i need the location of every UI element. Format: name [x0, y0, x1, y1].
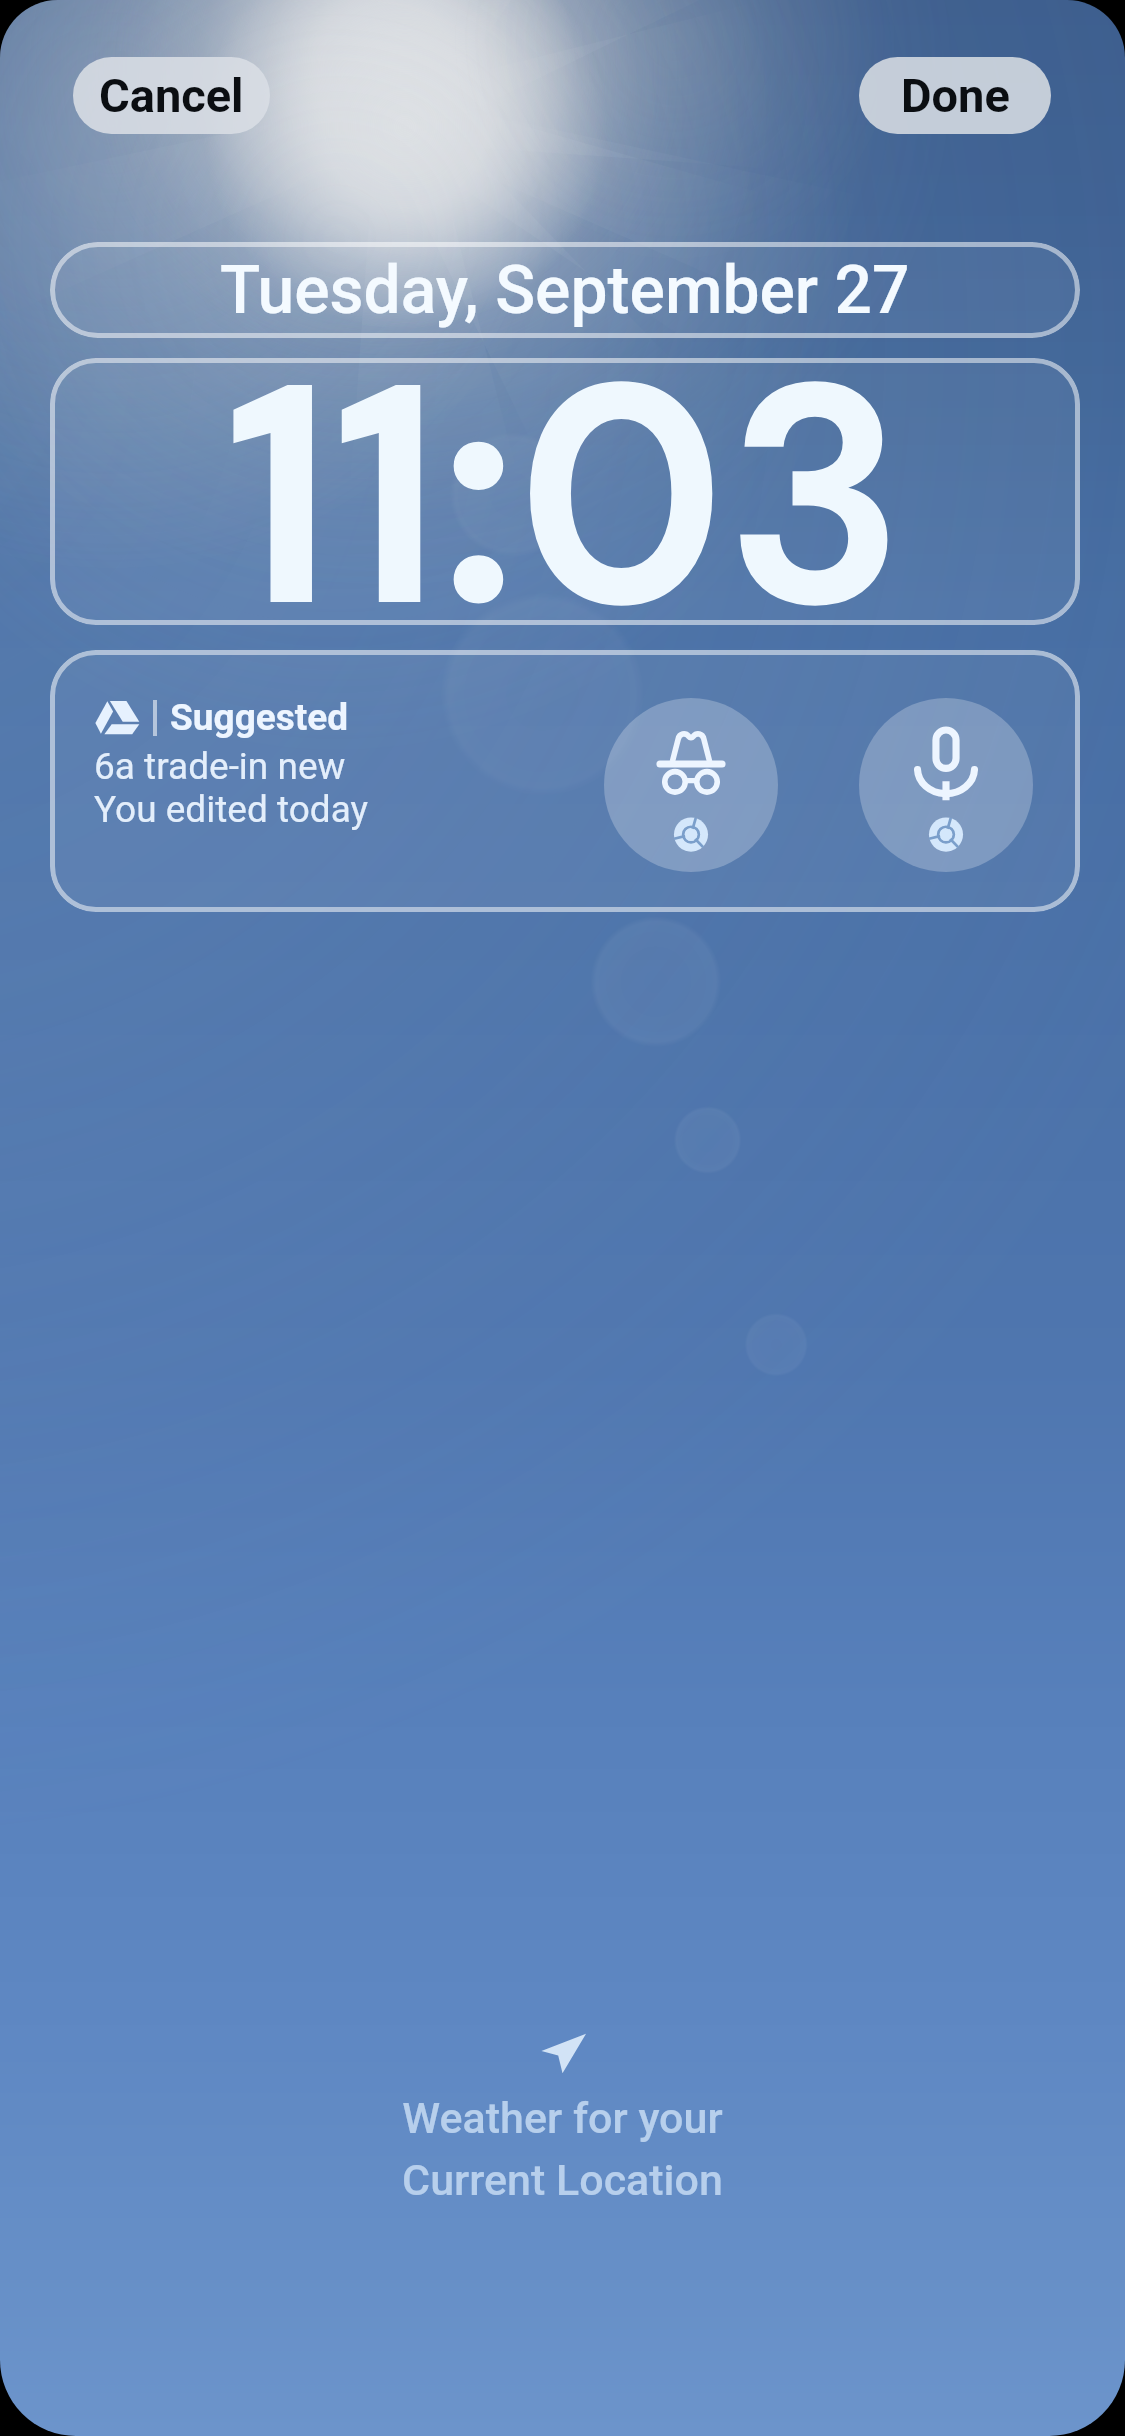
button[interactable]: 11:03 — [50, 358, 1080, 625]
staticText: Weather for your — [402, 2093, 723, 2143]
button[interactable]: Tuesday, September 27 — [50, 242, 1080, 338]
staticText: 6a trade-in new — [94, 745, 346, 788]
staticText: Tuesday, September 27 — [220, 252, 910, 329]
staticText: 11:03 — [224, 358, 906, 625]
staticText: You edited today — [94, 788, 369, 831]
staticText: Suggested — [170, 696, 349, 739]
button[interactable]: Weather for your — [402, 2032, 723, 2205]
button[interactable]: Open incognito tab in Chrome — [604, 698, 778, 872]
staticText: Cancel — [99, 68, 244, 123]
button[interactable]: Suggested — [50, 650, 1080, 912]
button[interactable]: Cancel — [73, 57, 270, 134]
button[interactable]: Done — [859, 57, 1051, 134]
staticText: Current Location — [402, 2155, 723, 2205]
button[interactable]: Voice search in Chrome — [859, 698, 1033, 872]
staticText: Done — [901, 68, 1010, 123]
